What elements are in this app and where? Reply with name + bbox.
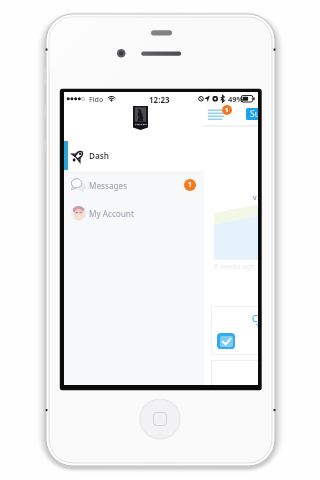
button[interactable]: Su [246,108,258,120]
staticText: 1 [188,180,193,190]
button[interactable]: Dash [64,141,204,170]
button[interactable]: My Account [64,199,204,228]
staticText: Dash [89,150,110,161]
staticText: 1 [225,106,229,114]
staticText: Co [252,312,258,324]
staticText: Messages [89,180,128,191]
button[interactable]: Messages [64,171,204,200]
staticText: Fido [89,95,104,105]
staticText: My Account [89,208,134,219]
button[interactable]: Mark complete [217,333,235,349]
staticText: Su [250,108,258,120]
staticText: 12:23 [149,94,170,105]
button[interactable]: Open navigation menu [208,108,225,122]
staticText: 49% [228,94,244,104]
staticText: 6 weeks ago [214,262,255,272]
staticText: v [253,193,257,203]
staticText: v [256,319,258,329]
